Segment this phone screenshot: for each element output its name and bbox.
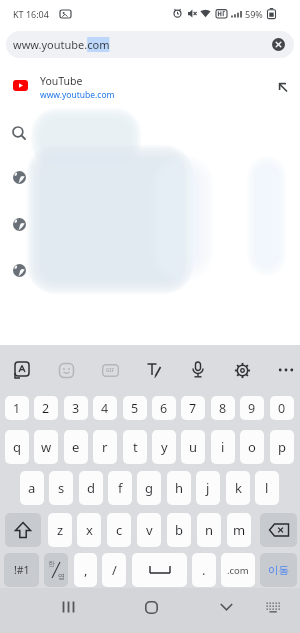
button[interactable]: .com: [221, 553, 255, 587]
button[interactable]: i: [211, 430, 235, 464]
button[interactable]: t: [123, 430, 147, 464]
button[interactable]: [132, 553, 187, 587]
button[interactable]: [54, 594, 82, 620]
button[interactable]: www.youtube.com: [6, 31, 294, 58]
button[interactable]: e: [64, 430, 88, 464]
button[interactable]: !#1: [4, 553, 39, 587]
staticText: 2: [42, 400, 50, 417]
button[interactable]: [184, 356, 212, 384]
button[interactable]: x: [77, 513, 101, 547]
staticText: /: [112, 561, 117, 579]
button[interactable]: [0, 209, 300, 239]
button[interactable]: 한: [44, 553, 68, 587]
button[interactable]: u: [181, 430, 205, 464]
staticText: 영: [58, 572, 65, 581]
button[interactable]: [260, 513, 297, 547]
button[interactable]: 5: [123, 396, 147, 420]
button[interactable]: o: [240, 430, 264, 464]
button[interactable]: [52, 356, 80, 384]
button[interactable]: y: [152, 430, 176, 464]
button[interactable]: .: [192, 553, 216, 587]
button[interactable]: 6: [152, 396, 176, 420]
staticText: 0: [278, 400, 286, 417]
button[interactable]: r: [93, 430, 117, 464]
staticText: n: [205, 521, 214, 539]
staticText: www.youtube.com: [40, 89, 115, 101]
staticText: r: [102, 438, 108, 456]
staticText: a: [28, 479, 36, 497]
button[interactable]: 3: [64, 396, 88, 420]
staticText: v: [146, 521, 153, 539]
staticText: x: [86, 521, 93, 539]
staticText: 4: [101, 400, 109, 417]
staticText: b: [175, 521, 183, 539]
button[interactable]: ,: [74, 553, 97, 587]
staticText: g: [145, 479, 153, 497]
button[interactable]: f: [108, 471, 132, 505]
button[interactable]: p: [270, 430, 294, 464]
button[interactable]: 8: [211, 396, 235, 420]
staticText: d: [87, 479, 95, 497]
button[interactable]: m: [227, 513, 251, 547]
button[interactable]: v: [137, 513, 161, 547]
staticText: l: [265, 479, 269, 497]
button[interactable]: j: [196, 471, 220, 505]
button[interactable]: GIF: [96, 356, 124, 384]
button[interactable]: l: [255, 471, 279, 505]
button[interactable]: 4: [93, 396, 117, 420]
staticText: h: [175, 479, 184, 497]
button[interactable]: s: [49, 471, 73, 505]
staticText: .com: [227, 564, 249, 577]
staticText: t: [133, 438, 138, 456]
button[interactable]: [5, 513, 41, 547]
button[interactable]: 2: [34, 396, 58, 420]
staticText: 9: [248, 400, 256, 417]
button[interactable]: [272, 38, 285, 51]
button[interactable]: [0, 163, 300, 193]
staticText: u: [189, 438, 198, 456]
staticText: KT 16:04: [13, 8, 49, 20]
staticText: z: [57, 521, 64, 539]
staticText: ,: [84, 561, 88, 579]
button[interactable]: z: [48, 513, 72, 547]
button[interactable]: 1: [5, 396, 29, 420]
staticText: k: [235, 479, 242, 497]
staticText: 5: [131, 400, 139, 417]
button[interactable]: [261, 596, 285, 618]
staticText: 6: [160, 400, 168, 417]
staticText: q: [13, 438, 21, 456]
staticText: 한: [48, 559, 55, 568]
button[interactable]: [140, 356, 168, 384]
button[interactable]: 0: [270, 396, 294, 420]
staticText: 8: [219, 400, 227, 417]
button[interactable]: d: [79, 471, 103, 505]
button[interactable]: a: [20, 471, 44, 505]
button[interactable]: 이동: [260, 553, 297, 587]
button[interactable]: /: [102, 553, 126, 587]
button[interactable]: [8, 356, 36, 384]
button[interactable]: [228, 356, 256, 384]
staticText: GIF: [106, 367, 115, 374]
button[interactable]: [212, 594, 240, 620]
button[interactable]: [137, 594, 165, 620]
button[interactable]: [0, 256, 300, 286]
button[interactable]: n: [197, 513, 221, 547]
button[interactable]: k: [226, 471, 250, 505]
button[interactable]: q: [5, 430, 29, 464]
staticText: .: [202, 561, 206, 579]
button[interactable]: g: [137, 471, 161, 505]
button[interactable]: 7: [181, 396, 205, 420]
button[interactable]: w: [34, 430, 58, 464]
staticText: 7: [189, 400, 197, 417]
button[interactable]: [0, 64, 300, 110]
button[interactable]: 9: [240, 396, 264, 420]
button[interactable]: c: [107, 513, 131, 547]
staticText: 3: [72, 400, 80, 417]
button[interactable]: h: [167, 471, 191, 505]
staticText: c: [116, 521, 123, 539]
staticText: i: [221, 438, 225, 456]
button[interactable]: [0, 118, 300, 148]
button[interactable]: b: [167, 513, 191, 547]
staticText: j: [206, 479, 210, 497]
button[interactable]: [272, 356, 300, 384]
